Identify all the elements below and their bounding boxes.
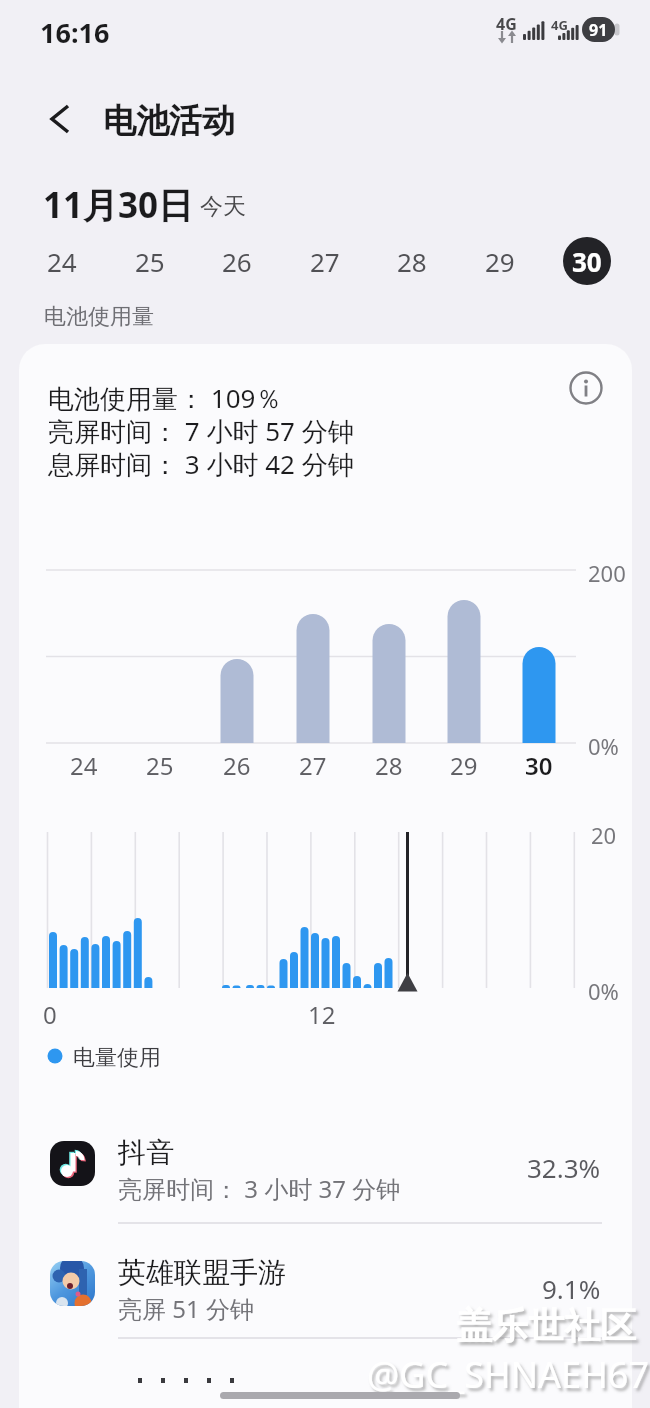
staticText: 亮屏时间： 7 小时 57 分钟 — [48, 413, 354, 449]
button[interactable] — [30, 1246, 620, 1342]
staticText: 27 — [310, 244, 340, 279]
staticText: 200 — [588, 558, 626, 588]
staticText: 今天 — [200, 192, 246, 221]
staticText: 4G — [496, 13, 517, 35]
staticText: 电池使用量 — [44, 303, 154, 331]
staticText: 24 — [70, 749, 98, 782]
staticText: 32.3% — [527, 1150, 601, 1185]
staticText: 28 — [397, 244, 427, 279]
staticText: 30 — [525, 749, 553, 782]
staticText: 91 — [589, 19, 608, 41]
staticText: 25 — [146, 749, 174, 782]
staticText: 抖音 — [118, 1135, 174, 1170]
staticText: 12 — [308, 998, 336, 1031]
staticText: 0 — [43, 998, 57, 1031]
staticText: 电池活动 — [103, 100, 235, 142]
staticText: 27 — [299, 749, 327, 782]
button[interactable] — [30, 1126, 620, 1222]
staticText: 0% — [588, 976, 619, 1006]
staticText: 亮屏 51 分钟 — [118, 1292, 254, 1325]
staticText: 0% — [588, 731, 619, 761]
staticText: 盖乐世社区 — [456, 1303, 636, 1348]
button[interactable]: 25 — [126, 237, 174, 285]
staticText: 26 — [223, 749, 251, 782]
button[interactable] — [36, 95, 84, 143]
button[interactable]: 26 — [213, 237, 261, 285]
staticText: 英雄联盟手游 — [118, 1255, 286, 1290]
button[interactable]: 24 — [38, 237, 86, 285]
button[interactable]: 28 — [388, 237, 436, 285]
button[interactable]: 29 — [476, 237, 524, 285]
staticText: 息屏时间： 3 小时 42 分钟 — [48, 446, 354, 482]
staticText: 29 — [485, 244, 515, 279]
staticText: 亮屏时间： 3 小时 37 分钟 — [118, 1172, 401, 1205]
staticText: 20 — [591, 820, 617, 850]
staticText: 30 — [572, 244, 602, 279]
staticText: 电池使用量： 109％ — [48, 380, 282, 416]
staticText: 28 — [375, 749, 403, 782]
button[interactable]: 30 — [563, 237, 611, 285]
staticText: 26 — [222, 244, 252, 279]
staticText: @GC_SHNAEH67 — [367, 1350, 649, 1399]
staticText: 11月30日 — [43, 181, 194, 229]
staticText: 25 — [135, 244, 165, 279]
staticText: 电量使用 — [73, 1044, 161, 1072]
staticText: 24 — [47, 244, 77, 279]
staticText: 4G — [551, 16, 568, 34]
button[interactable]: 27 — [301, 237, 349, 285]
button[interactable] — [562, 364, 610, 412]
staticText: 29 — [450, 749, 478, 782]
staticText: 9.1% — [542, 1271, 601, 1306]
staticText: 16:16 — [40, 14, 110, 51]
